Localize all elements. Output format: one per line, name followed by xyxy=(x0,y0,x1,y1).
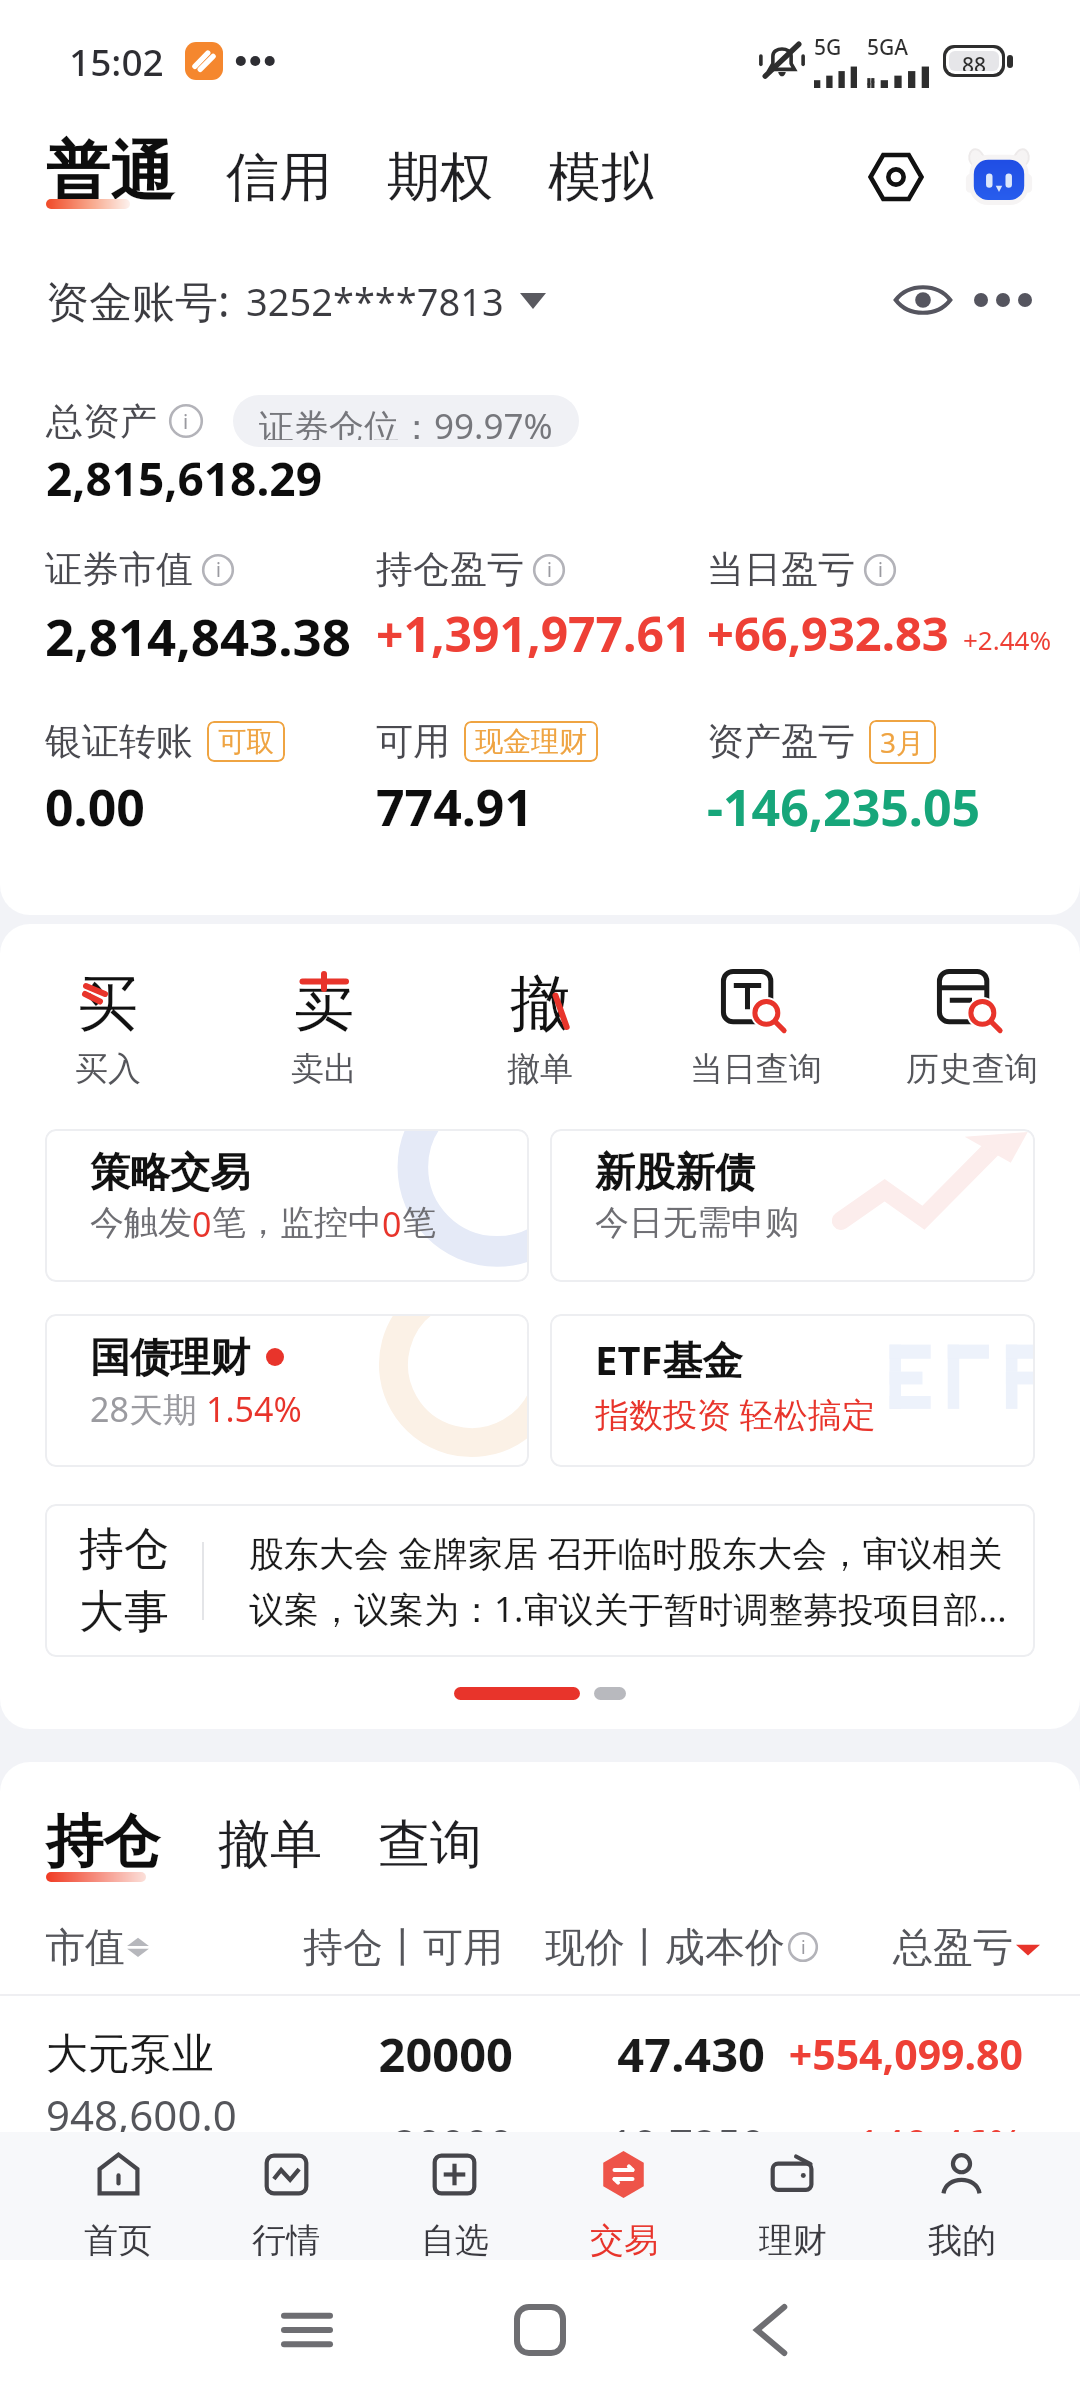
staticText: 可用 xyxy=(376,718,450,765)
staticText: 买入 xyxy=(75,1048,141,1090)
staticText: 资金账号: xyxy=(46,271,230,330)
button[interactable]: 交易 xyxy=(539,2132,708,2260)
staticText: 88 xyxy=(962,51,987,71)
staticText: 历史查询 xyxy=(906,1048,1038,1090)
staticText: 持仓盈亏 xyxy=(376,546,524,593)
staticText: 当日查询 xyxy=(690,1048,822,1090)
staticText: 持仓 xyxy=(46,1806,160,1878)
button[interactable]: 持仓 xyxy=(46,1806,160,1888)
staticText: +554,099.80 xyxy=(765,2026,1023,2082)
button[interactable]: 自选 xyxy=(370,2132,539,2260)
staticText: 国债理财 xyxy=(90,1332,250,1382)
button[interactable]: 撤单 xyxy=(218,1812,322,1888)
button[interactable]: 卖 xyxy=(216,964,432,1092)
staticText: 证券仓位：99.97% xyxy=(259,402,553,440)
staticText: +1,391,977.61 xyxy=(376,601,692,664)
button[interactable]: 信用 xyxy=(226,144,332,211)
staticText: 现金理财 xyxy=(475,724,587,759)
button[interactable]: 当日查询 xyxy=(648,964,864,1092)
staticText: 3月 xyxy=(880,723,925,761)
staticText: i xyxy=(878,557,883,583)
staticText: 笔 xyxy=(402,1201,436,1244)
staticText: i xyxy=(183,408,189,435)
staticText: 今日无需申购 xyxy=(595,1201,799,1244)
button[interactable]: 模拟 xyxy=(548,144,654,211)
staticText: 理财 xyxy=(759,2219,827,2260)
staticText: 5GA xyxy=(867,33,909,62)
staticText: 撤 xyxy=(510,966,570,1042)
button[interactable]: 我的 xyxy=(877,2132,1046,2260)
button[interactable]: 期权 xyxy=(387,144,493,211)
staticText: 总盈亏 xyxy=(893,1922,1013,1972)
staticText: 15:02 xyxy=(69,36,164,86)
button[interactable]: Settings xyxy=(860,141,932,213)
staticText: 19.7250 xyxy=(513,2115,765,2172)
staticText: 策略交易 xyxy=(90,1147,250,1197)
staticText: 资产盈亏 xyxy=(707,718,855,765)
staticText: 今触发 xyxy=(90,1201,192,1244)
staticText: 2,815,618.29 xyxy=(46,447,322,510)
staticText: 卖出 xyxy=(291,1048,357,1090)
button[interactable]: AI assistant xyxy=(962,140,1036,214)
staticText: 新股新债 xyxy=(595,1147,755,1197)
button[interactable]: 买 xyxy=(0,964,216,1092)
staticText: 银证转账 xyxy=(45,718,193,765)
staticText: 我的 xyxy=(928,2219,996,2260)
staticText: 指数投资 轻松搞定 xyxy=(595,1391,876,1437)
staticText: 交易 xyxy=(590,2219,658,2260)
staticText: 笔，监控中 xyxy=(212,1201,382,1244)
staticText: 28天期 xyxy=(90,1386,206,1432)
button[interactable]: 历史查询 xyxy=(864,964,1080,1092)
staticText: 2,814,843.38 xyxy=(45,601,351,664)
button[interactable]: 撤 xyxy=(432,964,648,1092)
button[interactable]: 持仓 xyxy=(45,1504,1035,1657)
staticText: -146,235.05 xyxy=(707,773,981,836)
staticText: ETF基金 xyxy=(595,1332,743,1387)
staticText: 20000 xyxy=(253,2022,513,2086)
staticText: 市值 xyxy=(45,1922,125,1972)
staticText: 47.430 xyxy=(513,2022,765,2086)
button[interactable]: ETF基金 xyxy=(550,1314,1035,1467)
button[interactable]: Back xyxy=(728,2288,812,2372)
button[interactable]: 新股新债 xyxy=(550,1129,1035,1282)
staticText: +140.46% xyxy=(765,2115,1023,2172)
staticText: 买 xyxy=(78,966,138,1042)
staticText: 0 xyxy=(192,1201,212,1247)
staticText: 现价丨成本价 xyxy=(545,1922,785,1972)
staticText: i xyxy=(547,557,552,583)
staticText: 948,600.00 xyxy=(46,2086,253,2200)
staticText: 0.00 xyxy=(45,773,145,836)
staticText: 普通 xyxy=(46,132,174,213)
button[interactable]: 普通 xyxy=(46,132,174,223)
staticText: 3252****7813 xyxy=(246,275,504,327)
staticText: 股东大会 金牌家居 召开临时股东大会，审议相关 xyxy=(249,1529,1003,1577)
button[interactable]: More options xyxy=(970,267,1036,333)
staticText: 大元泵业 xyxy=(46,2028,253,2081)
button[interactable]: 首页 xyxy=(34,2132,202,2260)
staticText: 持仓 xyxy=(79,1521,169,1578)
button[interactable]: Recent apps xyxy=(265,2288,349,2372)
staticText: i xyxy=(801,1935,806,1960)
button[interactable]: 行情 xyxy=(202,2132,370,2260)
staticText: 议案，议案为：1.审议关于暂时调整募投项目部... xyxy=(249,1585,1007,1633)
staticText: 大事 xyxy=(79,1584,169,1641)
staticText: 行情 xyxy=(252,2219,320,2260)
staticText: 0 xyxy=(382,1201,402,1247)
staticText: 5G xyxy=(814,33,842,62)
staticText: +2.44% xyxy=(963,622,1052,657)
staticText: 首页 xyxy=(84,2219,152,2260)
staticText: 撤单 xyxy=(507,1048,573,1090)
button[interactable]: Hide balance xyxy=(890,267,956,333)
staticText: 20000 xyxy=(253,2115,513,2172)
button[interactable]: 策略交易 xyxy=(45,1129,529,1282)
staticText: 卖 xyxy=(294,966,354,1042)
staticText: 774.91 xyxy=(376,773,534,836)
staticText: 持仓丨可用 xyxy=(303,1922,503,1972)
button[interactable]: 理财 xyxy=(708,2132,877,2260)
button[interactable]: 资金账号: xyxy=(46,271,546,330)
button[interactable]: Home xyxy=(498,2288,582,2372)
button[interactable]: 查询 xyxy=(378,1812,482,1888)
staticText: i xyxy=(216,557,221,583)
button[interactable]: 国债理财 xyxy=(45,1314,529,1467)
button[interactable]: 大元泵业 xyxy=(46,2022,1023,2086)
